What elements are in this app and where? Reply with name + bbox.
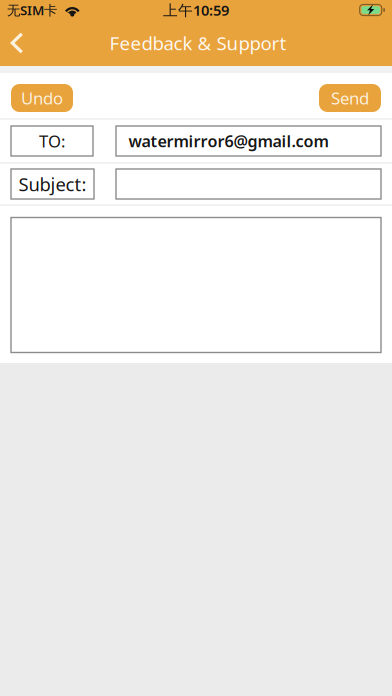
button[interactable]: Back [0,21,34,65]
staticText: Feedback & Support [109,31,286,55]
staticText: 无SIM卡 [7,1,57,19]
button[interactable]: Send [319,84,381,112]
staticText: Subject: [18,171,86,197]
staticText: Undo [21,87,63,109]
staticText: TO: [39,130,65,152]
staticText: 上午10:59 [163,0,229,20]
staticText: Send [331,87,369,109]
button[interactable]: Undo [11,84,73,112]
staticText: watermirror6@gmail.com [128,130,328,152]
